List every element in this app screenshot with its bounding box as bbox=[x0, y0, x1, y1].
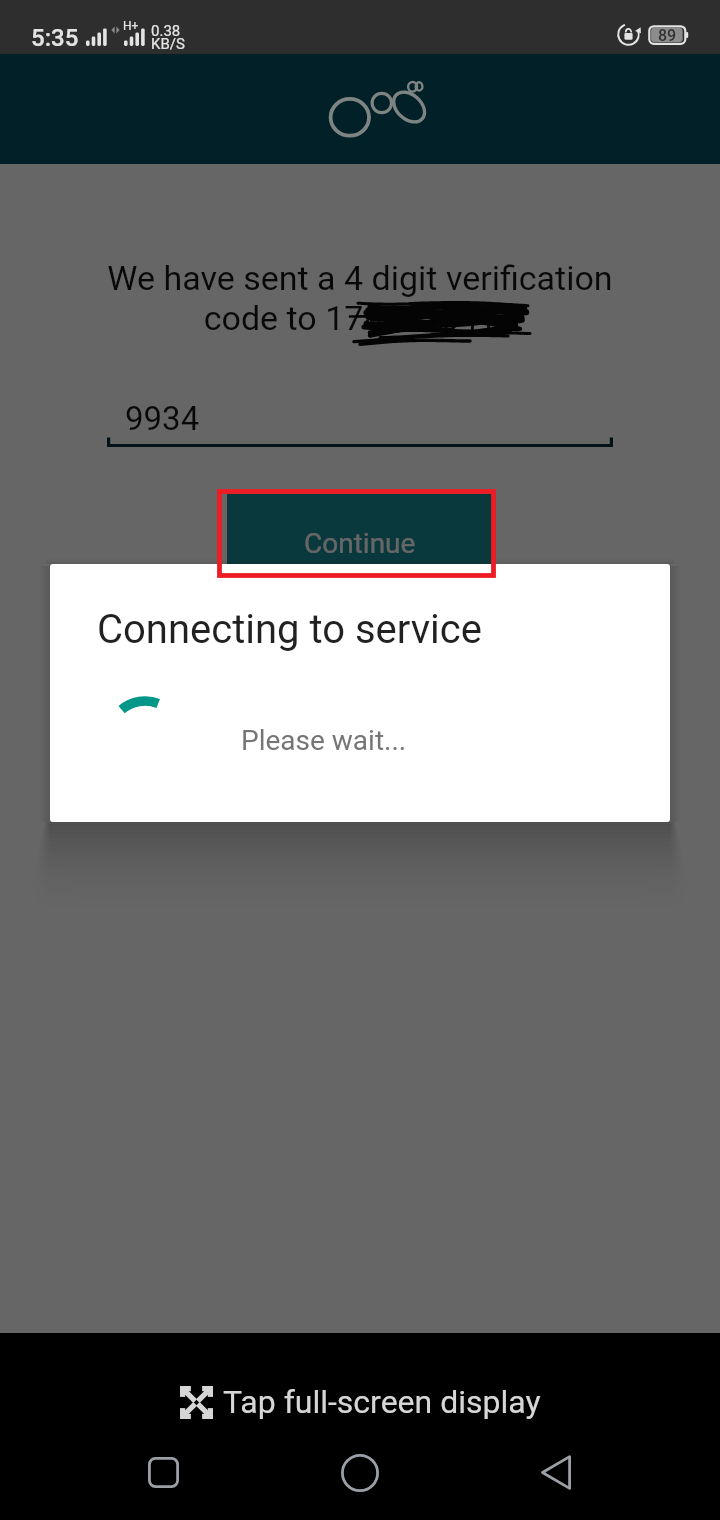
staticText: KB/S bbox=[151, 35, 185, 53]
button[interactable]: Back bbox=[500, 1429, 610, 1516]
staticText: Tap full-screen display bbox=[223, 1383, 541, 1421]
staticText: Connecting to service bbox=[97, 606, 482, 653]
staticText: 9934 bbox=[125, 399, 200, 438]
button[interactable]: Tap full-screen display bbox=[0, 1365, 720, 1439]
staticText: We have sent a 4 digit verification code… bbox=[105, 258, 615, 339]
button[interactable]: Recent apps bbox=[108, 1429, 218, 1516]
other: Tap full-screen display bbox=[180, 1386, 213, 1419]
staticText: 89 bbox=[658, 26, 677, 45]
staticText: 0.38 bbox=[151, 22, 181, 40]
button[interactable]: Home bbox=[305, 1429, 415, 1516]
staticText: Please wait... bbox=[241, 724, 407, 757]
button[interactable]: Continue bbox=[227, 494, 492, 592]
staticText: Continue bbox=[304, 527, 416, 560]
staticText: H+ bbox=[123, 19, 139, 33]
staticText: 5:35 bbox=[31, 24, 79, 52]
